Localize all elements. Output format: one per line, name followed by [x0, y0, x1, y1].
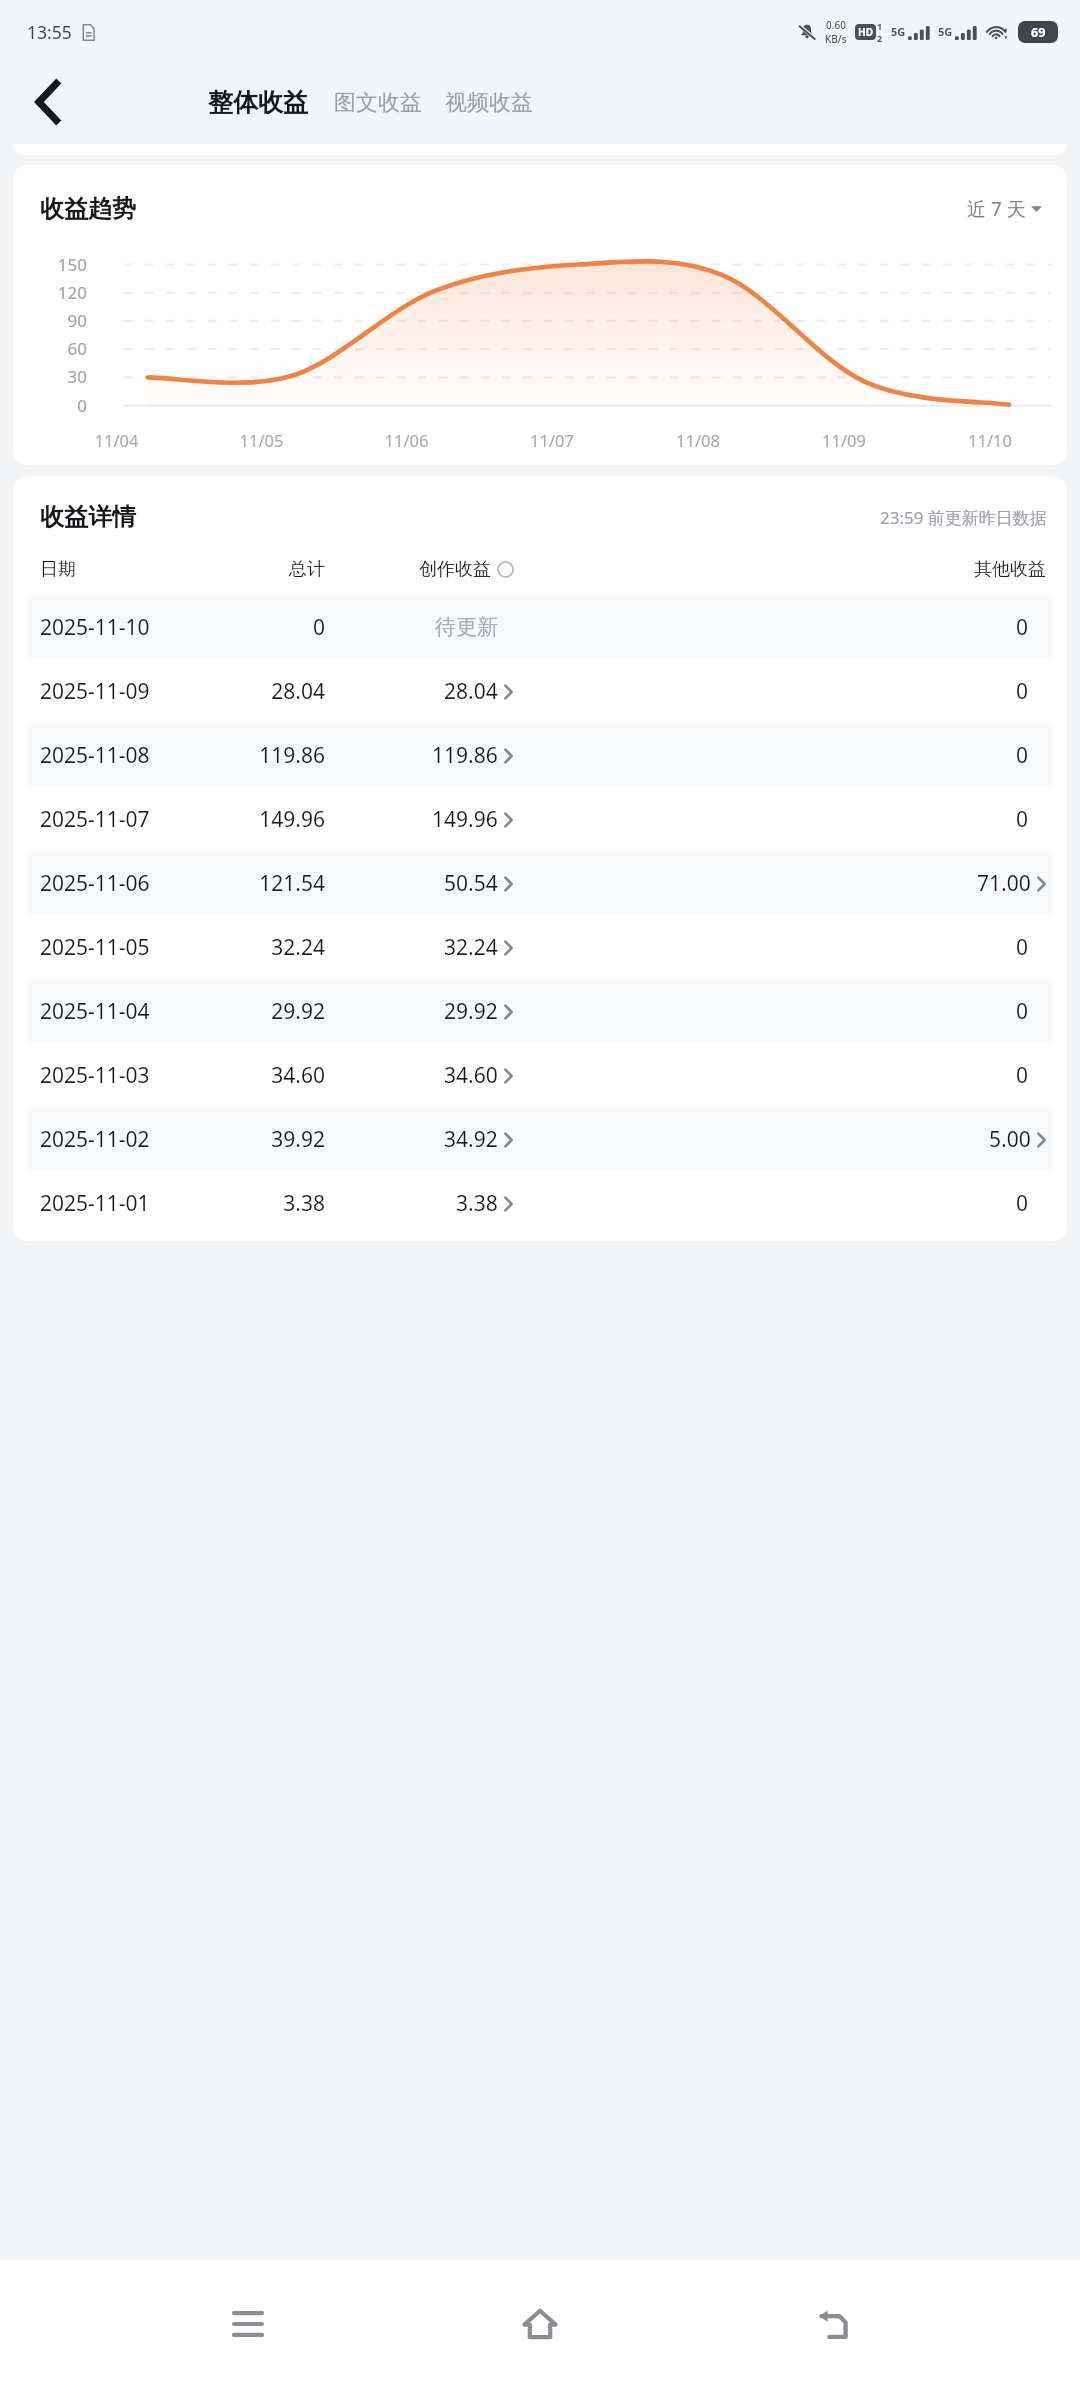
staticText: 0 — [1016, 613, 1029, 642]
staticText: 2025-11-01 — [40, 1189, 220, 1218]
staticText: 视频收益 — [445, 89, 533, 117]
staticText: 2025-11-02 — [40, 1125, 220, 1154]
staticText: 0 — [13, 394, 87, 417]
staticText: 0 — [220, 613, 325, 642]
staticText: 2 — [877, 32, 883, 44]
staticText: 2025-11-05 — [40, 933, 220, 962]
staticText: 2025-11-04 — [40, 997, 220, 1026]
staticText: 2025-11-06 — [40, 869, 220, 898]
button[interactable]: 2025-11-02 — [27, 1107, 1053, 1171]
staticText: 整体收益 — [208, 87, 308, 118]
staticText: 0 — [1016, 997, 1029, 1026]
button[interactable]: 2025-11-10 — [27, 595, 1053, 659]
staticText: 创作收益 — [419, 558, 491, 581]
button[interactable]: 2025-11-09 — [27, 659, 1053, 723]
button[interactable]: 最近任务 — [203, 2279, 293, 2369]
staticText: 121.54 — [220, 869, 325, 898]
staticText: 2025-11-09 — [40, 677, 220, 706]
staticText: 5G — [938, 24, 953, 39]
staticText: 11/07 — [479, 429, 625, 451]
button[interactable]: 主页 — [495, 2279, 585, 2369]
staticText: 待更新 — [435, 614, 498, 640]
staticText: 11/09 — [771, 429, 917, 451]
staticText: 29.92 — [220, 997, 325, 1026]
staticText: 0 — [1016, 805, 1029, 834]
staticText: 收益趋势 — [40, 194, 136, 224]
staticText: 0 — [1016, 933, 1029, 962]
staticText: 119.86 — [220, 741, 325, 770]
staticText: 5.00 — [989, 1125, 1031, 1154]
staticText: 23:59 前更新昨日数据 — [880, 506, 1047, 529]
staticText: 34.60 — [444, 1061, 498, 1090]
staticText: 5G — [891, 24, 906, 39]
staticText: 3.38 — [220, 1189, 325, 1218]
staticText: 近 7 天 — [967, 196, 1026, 222]
staticText: 11/08 — [625, 429, 771, 451]
staticText: 2025-11-03 — [40, 1061, 220, 1090]
staticText: 日期 — [40, 558, 220, 581]
staticText: 71.00 — [977, 869, 1031, 898]
staticText: 0 — [1016, 741, 1029, 770]
staticText: 34.60 — [220, 1061, 325, 1090]
button[interactable]: 返回 — [788, 2279, 878, 2369]
staticText: 120 — [13, 281, 87, 304]
staticText: 11/05 — [189, 429, 334, 451]
staticText: 2025-11-08 — [40, 741, 220, 770]
staticText: 119.86 — [432, 741, 498, 770]
staticText: 0 — [1016, 1061, 1029, 1090]
staticText: 50.54 — [444, 869, 498, 898]
button[interactable]: 2025-11-08 — [27, 723, 1053, 787]
staticText: 0 — [1016, 1189, 1029, 1218]
button[interactable]: 创作收益说明 — [496, 560, 515, 579]
staticText: 其他收益 — [974, 558, 1046, 581]
staticText: 1 — [877, 20, 883, 32]
staticText: 11/06 — [334, 429, 479, 451]
staticText: 150 — [13, 253, 87, 276]
staticText: 11/04 — [44, 429, 189, 451]
staticText: 149.96 — [220, 805, 325, 834]
staticText: 2025-11-10 — [40, 613, 220, 642]
button[interactable]: 视频收益 — [437, 81, 541, 125]
staticText: 32.24 — [220, 933, 325, 962]
staticText: 90 — [13, 309, 87, 332]
button[interactable]: 2025-11-05 — [27, 915, 1053, 979]
button[interactable]: 2025-11-01 — [27, 1171, 1053, 1235]
staticText: 149.96 — [432, 805, 498, 834]
staticText: 收益详情 — [40, 502, 136, 532]
staticText: 0 — [1016, 677, 1029, 706]
staticText: 总计 — [220, 558, 325, 581]
button[interactable]: 2025-11-03 — [27, 1043, 1053, 1107]
staticText: 11/10 — [917, 429, 1063, 451]
button[interactable]: 返回 — [16, 70, 80, 134]
staticText: 28.04 — [220, 677, 325, 706]
staticText: 13:55 — [27, 20, 72, 44]
button[interactable]: 近 7 天 — [962, 191, 1047, 227]
staticText: KB/s — [825, 32, 847, 46]
staticText: 39.92 — [220, 1125, 325, 1154]
button[interactable]: 2025-11-07 — [27, 787, 1053, 851]
staticText: HD — [858, 25, 873, 39]
staticText: 60 — [13, 337, 87, 360]
staticText: 34.92 — [444, 1125, 498, 1154]
button[interactable]: 图文收益 — [326, 81, 430, 125]
staticText: 3.38 — [456, 1189, 498, 1218]
staticText: 0.60 — [826, 18, 846, 32]
staticText: 32.24 — [444, 933, 498, 962]
staticText: 图文收益 — [334, 89, 422, 117]
staticText: 29.92 — [444, 997, 498, 1026]
button[interactable]: 整体收益 — [200, 79, 316, 126]
button[interactable]: 2025-11-04 — [27, 979, 1053, 1043]
staticText: 30 — [13, 365, 87, 388]
staticText: 28.04 — [444, 677, 498, 706]
staticText: 2025-11-07 — [40, 805, 220, 834]
staticText: 69 — [1031, 24, 1046, 41]
button[interactable]: 2025-11-06 — [27, 851, 1053, 915]
